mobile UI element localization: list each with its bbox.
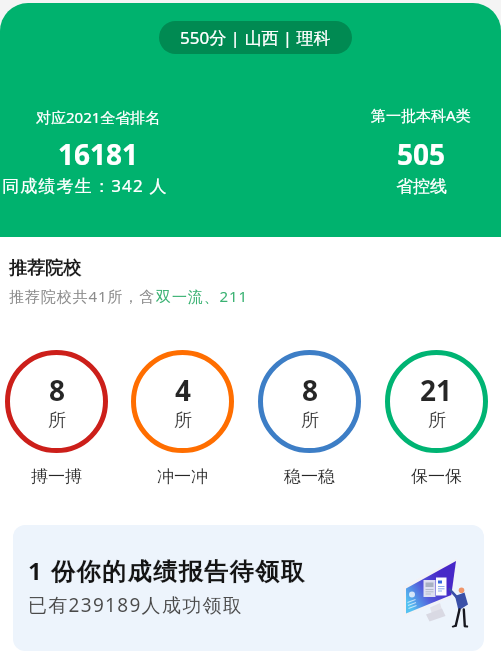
staticText: 所: [428, 409, 446, 432]
staticText: 505: [397, 135, 446, 173]
staticText: 550分 | 山西 | 理科: [180, 26, 331, 49]
staticText: 所: [174, 409, 192, 432]
staticText: 21: [420, 371, 453, 409]
staticText: 16181: [58, 135, 139, 173]
button[interactable]: 1 份你的成绩报告待领取: [13, 525, 484, 651]
staticText: 已有239189人成功领取: [28, 592, 244, 618]
staticText: 4: [175, 371, 192, 409]
staticText: 推荐院校: [9, 257, 81, 280]
staticText: 稳一稳: [284, 466, 335, 487]
staticText: 8: [49, 371, 66, 409]
staticText: 双一流、211: [156, 286, 249, 306]
staticText: 保一保: [411, 466, 462, 487]
staticText: 8: [302, 371, 319, 409]
staticText: 冲一冲: [157, 466, 208, 487]
button[interactable]: 21: [385, 350, 488, 453]
staticText: 搏一搏: [31, 466, 82, 487]
staticText: 第一批本科A类: [371, 105, 471, 125]
staticText: 所: [301, 409, 319, 432]
staticText: 对应2021全省排名: [36, 107, 161, 127]
staticText: 1 份你的成绩报告待领取: [28, 554, 306, 587]
staticText: 推荐院校共41所，含: [9, 286, 156, 306]
staticText: 省控线: [396, 176, 447, 197]
button[interactable]: 8: [258, 350, 361, 453]
button[interactable]: 8: [5, 350, 108, 453]
button[interactable]: 550分 | 山西 | 理科: [159, 21, 352, 54]
staticText: 所: [48, 409, 66, 432]
button[interactable]: 4: [131, 350, 234, 453]
staticText: 同成绩考生：342 人: [2, 174, 168, 197]
